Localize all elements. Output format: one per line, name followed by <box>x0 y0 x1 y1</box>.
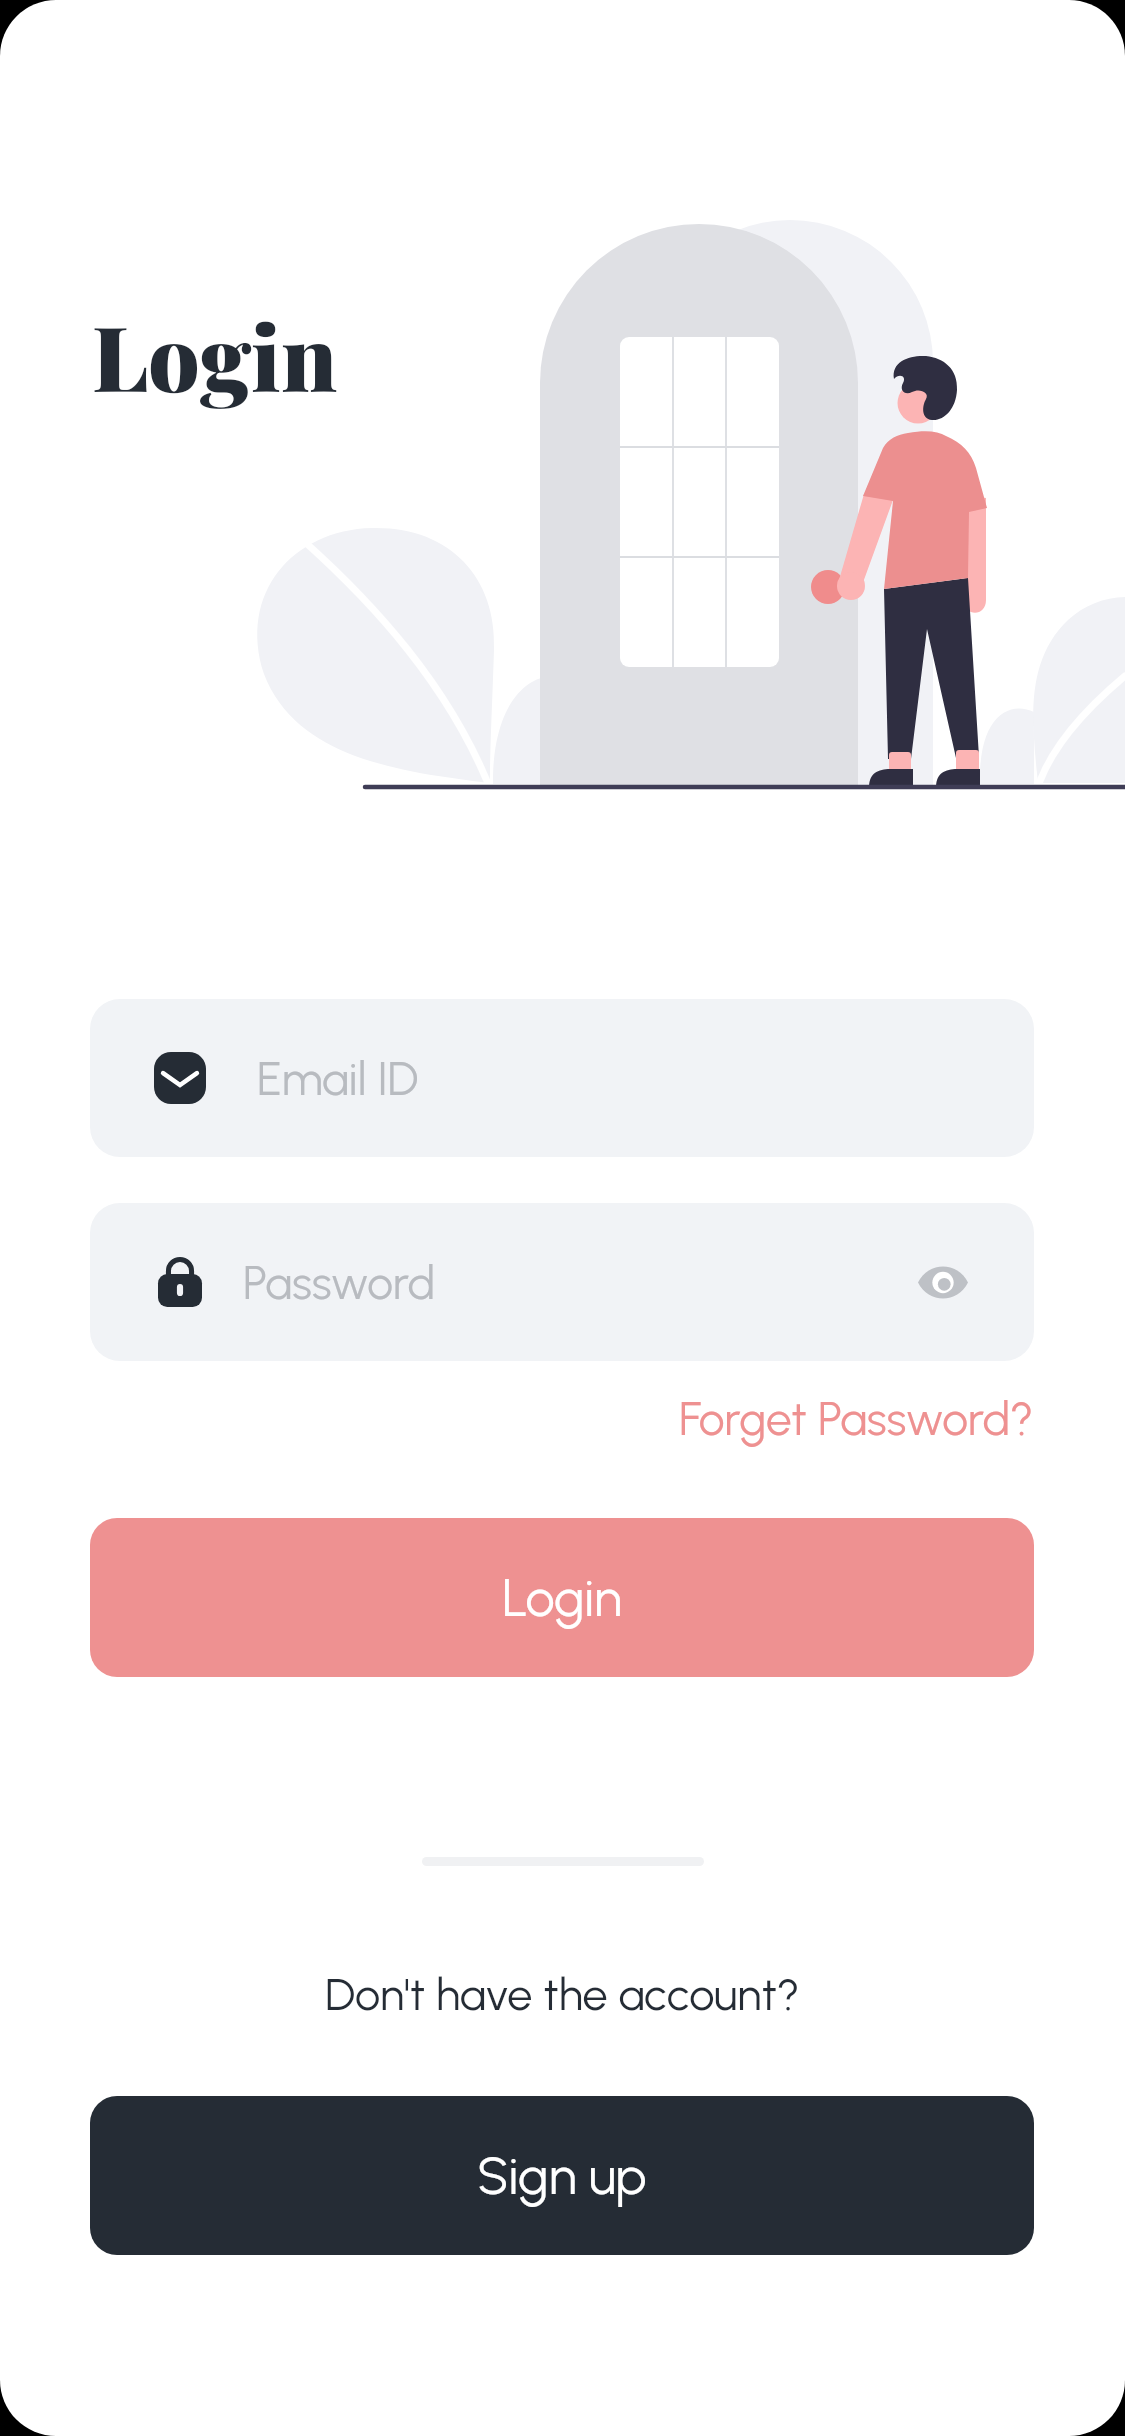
staticText: Password <box>243 1255 436 1310</box>
staticText: Login <box>502 1567 622 1629</box>
staticText: Don't have the account? <box>325 1967 800 2021</box>
staticText: Sign up <box>477 2145 647 2207</box>
button[interactable]: Forget Password? <box>679 1391 1034 1446</box>
button[interactable]: Show password <box>895 1203 991 1361</box>
button[interactable]: Login <box>90 1518 1034 1677</box>
staticText: Email ID <box>257 1051 419 1106</box>
button[interactable]: Password <box>90 1203 1034 1361</box>
button[interactable]: Sign up <box>90 2096 1034 2255</box>
button[interactable]: Email ID <box>90 999 1034 1157</box>
